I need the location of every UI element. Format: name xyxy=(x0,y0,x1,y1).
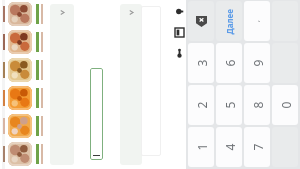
button[interactable]: Layout xyxy=(172,25,186,39)
staticText: 7 xyxy=(249,143,265,150)
staticText: 0 xyxy=(277,101,293,108)
staticText: Далее xyxy=(223,8,234,34)
button[interactable] xyxy=(0,84,48,112)
staticText: 5 xyxy=(221,101,237,108)
button[interactable] xyxy=(0,0,48,28)
button[interactable]: 5 xyxy=(216,85,242,125)
button[interactable]: 1 xyxy=(188,127,214,167)
button[interactable]: 8 xyxy=(244,85,270,125)
button[interactable]: 0 xyxy=(272,85,298,125)
button[interactable]: 3 xyxy=(188,43,214,83)
staticText: 9 xyxy=(249,59,265,66)
button[interactable]: 2 xyxy=(188,85,214,125)
staticText: 2 xyxy=(193,101,209,108)
button[interactable] xyxy=(0,112,48,140)
staticText: 6 xyxy=(221,59,237,66)
button[interactable]: Отсутствует xyxy=(120,4,142,165)
button[interactable]: 4 xyxy=(216,127,242,167)
button[interactable]: Settings xyxy=(172,46,186,60)
button[interactable]: Случайная xyxy=(50,4,74,165)
button[interactable]: 6 xyxy=(216,43,242,83)
staticText: , xyxy=(252,20,262,22)
button[interactable]: Количество (макс 100) xyxy=(78,0,104,169)
staticText: 4 xyxy=(221,143,237,150)
button[interactable]: 9 xyxy=(244,43,270,83)
button[interactable]: Длительность состояния сек. (0 - xyxy=(143,0,167,169)
button[interactable]: Backspace xyxy=(188,1,214,41)
staticText: 1 xyxy=(193,143,209,150)
button[interactable]: Далее xyxy=(216,1,242,41)
button[interactable]: , xyxy=(244,1,270,41)
button[interactable] xyxy=(0,28,48,56)
button[interactable] xyxy=(90,68,103,160)
staticText: 8 xyxy=(249,101,265,108)
button[interactable] xyxy=(0,140,48,168)
staticText: 3 xyxy=(193,59,209,66)
button[interactable] xyxy=(0,56,48,84)
button[interactable]: Preview xyxy=(172,4,186,18)
button[interactable]: 7 xyxy=(244,127,270,167)
